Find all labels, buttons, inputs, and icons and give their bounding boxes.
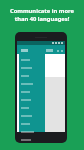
button[interactable] bbox=[19, 64, 45, 72]
button[interactable] bbox=[19, 56, 45, 64]
button[interactable] bbox=[19, 72, 45, 80]
button[interactable] bbox=[19, 96, 45, 104]
staticText: Communicate in more than 40 languages! bbox=[0, 7, 84, 22]
button[interactable] bbox=[19, 136, 45, 143]
button[interactable] bbox=[19, 112, 45, 120]
button[interactable] bbox=[19, 88, 45, 96]
button[interactable] bbox=[19, 128, 45, 136]
button[interactable] bbox=[19, 120, 45, 128]
button[interactable] bbox=[19, 80, 45, 88]
button[interactable] bbox=[19, 104, 45, 112]
